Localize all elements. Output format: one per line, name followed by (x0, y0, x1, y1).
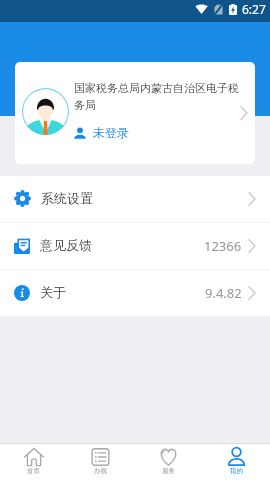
staticText: 6:27 (242, 1, 266, 17)
staticText: 12366 (204, 237, 242, 255)
button[interactable]: Profile (202, 444, 270, 480)
staticText: 9.4.82 (205, 284, 242, 302)
button[interactable]: Tax (67, 444, 134, 480)
staticText: 意见反馈 (40, 237, 92, 253)
staticText: 系统设置 (41, 190, 93, 206)
staticText: 我的 (230, 467, 243, 475)
other: Settings (14, 190, 31, 207)
other: Services (159, 448, 178, 466)
button[interactable]: Services (134, 444, 202, 480)
button[interactable]: Settings (0, 176, 270, 222)
staticText: 首页 (27, 467, 40, 475)
other: User (74, 127, 86, 139)
staticText: 办税 (94, 467, 107, 475)
button[interactable]: Home (0, 444, 67, 480)
other: Profile (228, 447, 245, 466)
other: About (14, 285, 30, 301)
other: Feedback (14, 238, 30, 254)
button[interactable]: 国家税务总局内蒙古自治区电子税务局 (15, 62, 255, 164)
staticText: 国家税务总局内蒙古自治区电子税务局 (74, 81, 242, 112)
staticText: 服务 (162, 467, 175, 475)
staticText: 关于 (40, 284, 66, 300)
button[interactable]: Feedback (0, 223, 270, 269)
other: Home (24, 447, 44, 466)
staticText: 未登录 (93, 125, 129, 140)
other: Tax (91, 448, 110, 466)
button[interactable]: About (0, 270, 270, 316)
